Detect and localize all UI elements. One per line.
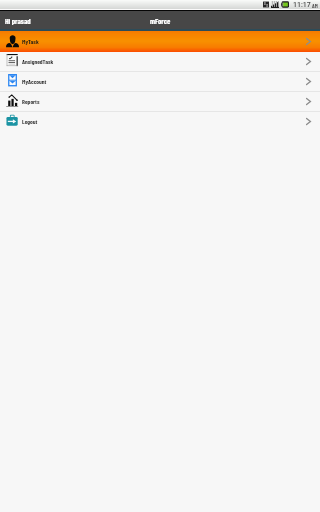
staticText: Reports bbox=[22, 98, 40, 105]
staticText: AnsignedTask bbox=[22, 58, 54, 65]
staticText: mForce bbox=[150, 16, 171, 25]
staticText: MyAccount bbox=[22, 78, 47, 85]
staticText: MyTask bbox=[22, 38, 39, 45]
button[interactable]: MyAccount bbox=[0, 72, 320, 91]
button[interactable]: MyTask bbox=[0, 31, 320, 52]
staticText: Hi prasad bbox=[5, 16, 31, 25]
staticText: 11:17 bbox=[293, 1, 311, 9]
button[interactable]: Reports bbox=[0, 92, 320, 111]
button[interactable]: Logout bbox=[0, 112, 320, 131]
staticText: AM bbox=[312, 2, 318, 9]
button[interactable]: AnsignedTask bbox=[0, 52, 320, 71]
staticText: Logout bbox=[22, 118, 38, 125]
